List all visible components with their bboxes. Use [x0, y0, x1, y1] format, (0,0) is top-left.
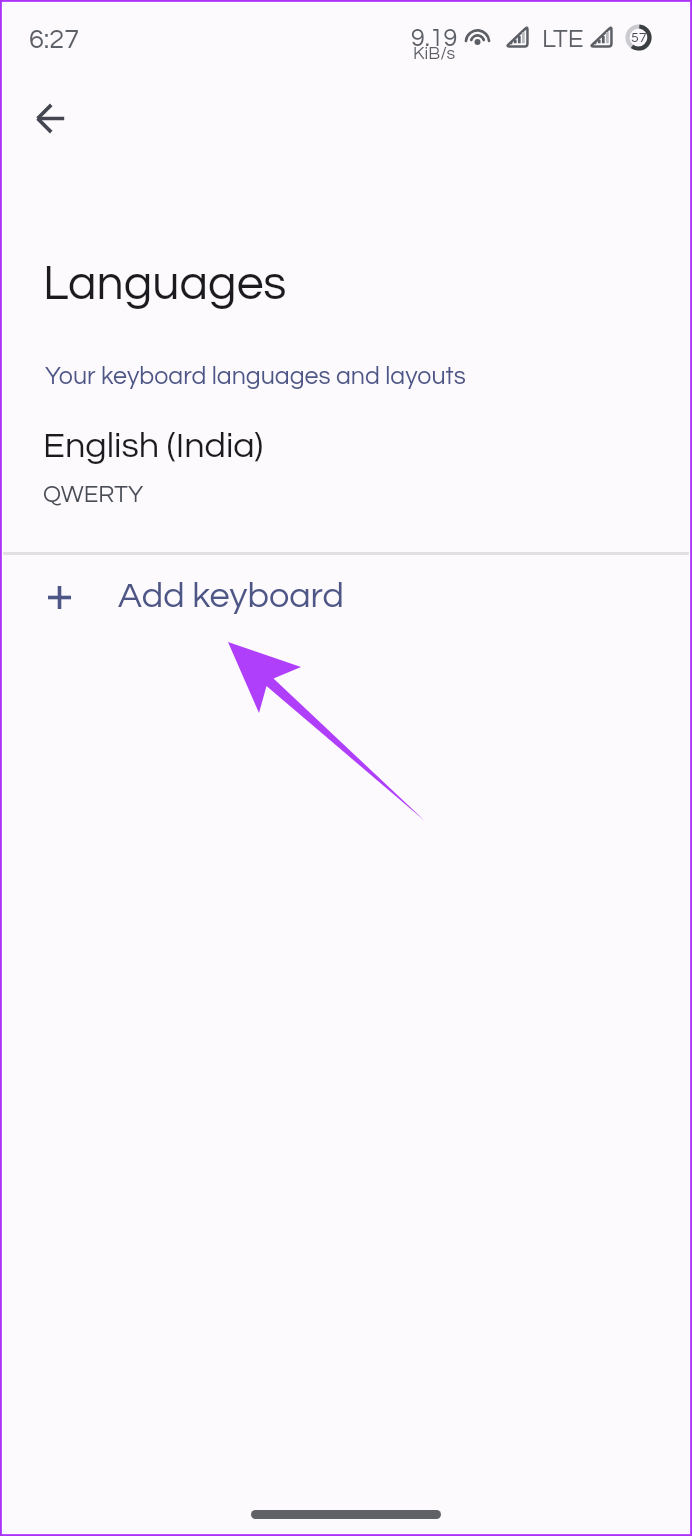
staticText: Your keyboard languages and layouts [45, 363, 466, 389]
staticText: LTE [542, 26, 584, 53]
other: Annotation arrow pointing at Add keyboar… [0, 0, 692, 1536]
staticText: QWERTY [43, 482, 144, 507]
other: Hotspot [466, 26, 489, 46]
staticText: 9.19 [411, 25, 458, 51]
other: Mobile signal [505, 25, 529, 48]
staticText: 6:27 [29, 26, 80, 54]
button[interactable]: Add keyboard [0, 553, 692, 641]
staticText: KiB/s [413, 44, 456, 63]
staticText: 57 [631, 31, 647, 45]
button[interactable]: Navigate up [14, 82, 86, 154]
staticText: English (India) [43, 427, 264, 464]
button[interactable]: English (India) [0, 423, 692, 548]
other: Mobile signal [589, 25, 613, 48]
other: Battery 57 percent [625, 24, 652, 51]
staticText: Languages [43, 260, 287, 309]
staticText: Add keyboard [118, 577, 344, 614]
